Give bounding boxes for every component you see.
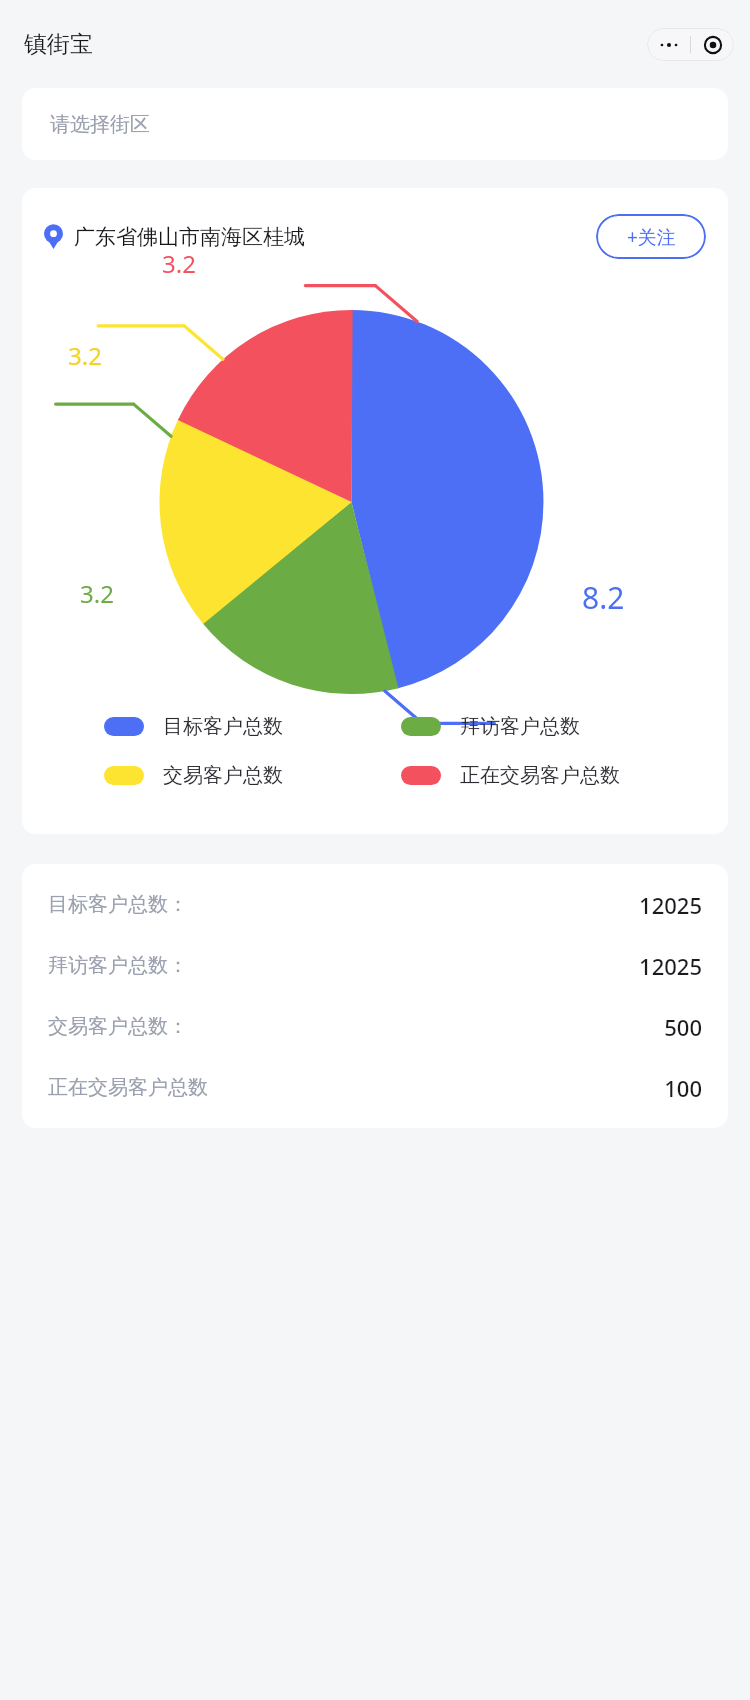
button[interactable]: 正在交易客户总数 [401, 763, 698, 788]
staticText: 广东省佛山市南海区桂城 [74, 224, 305, 250]
staticText: 3.2 [80, 577, 114, 610]
staticText: 镇街宝 [24, 30, 93, 59]
button[interactable]: 目标客户总数： [48, 874, 702, 935]
staticText: 500 [664, 1012, 702, 1042]
staticText: 请选择街区 [50, 112, 150, 137]
button[interactable]: 目标客户总数 [104, 714, 401, 739]
button[interactable]: Close [691, 28, 734, 61]
staticText: 正在交易客户总数 [48, 1075, 208, 1100]
button[interactable]: 拜访客户总数 [401, 714, 698, 739]
staticText: 3.2 [162, 247, 196, 280]
staticText: 8.2 [582, 577, 625, 618]
staticText: 交易客户总数： [48, 1014, 188, 1039]
staticText: 目标客户总数 [163, 714, 283, 739]
button[interactable]: 正在交易客户总数 [48, 1057, 702, 1118]
button[interactable]: +关注 [596, 214, 706, 259]
staticText: 12025 [639, 890, 702, 920]
staticText: 目标客户总数： [48, 892, 188, 917]
staticText: 交易客户总数 [163, 763, 283, 788]
button[interactable]: 交易客户总数： [48, 996, 702, 1057]
staticText: +关注 [627, 224, 676, 250]
staticText: 3.2 [68, 339, 102, 372]
staticText: 拜访客户总数： [48, 953, 188, 978]
staticText: 正在交易客户总数 [460, 763, 620, 788]
staticText: 12025 [639, 951, 702, 981]
staticText: 100 [664, 1073, 702, 1103]
button[interactable]: 拜访客户总数： [48, 935, 702, 996]
button[interactable]: 交易客户总数 [104, 763, 401, 788]
staticText: 拜访客户总数 [460, 714, 580, 739]
button[interactable]: More [647, 28, 690, 61]
button[interactable]: 请选择街区 [22, 88, 728, 160]
